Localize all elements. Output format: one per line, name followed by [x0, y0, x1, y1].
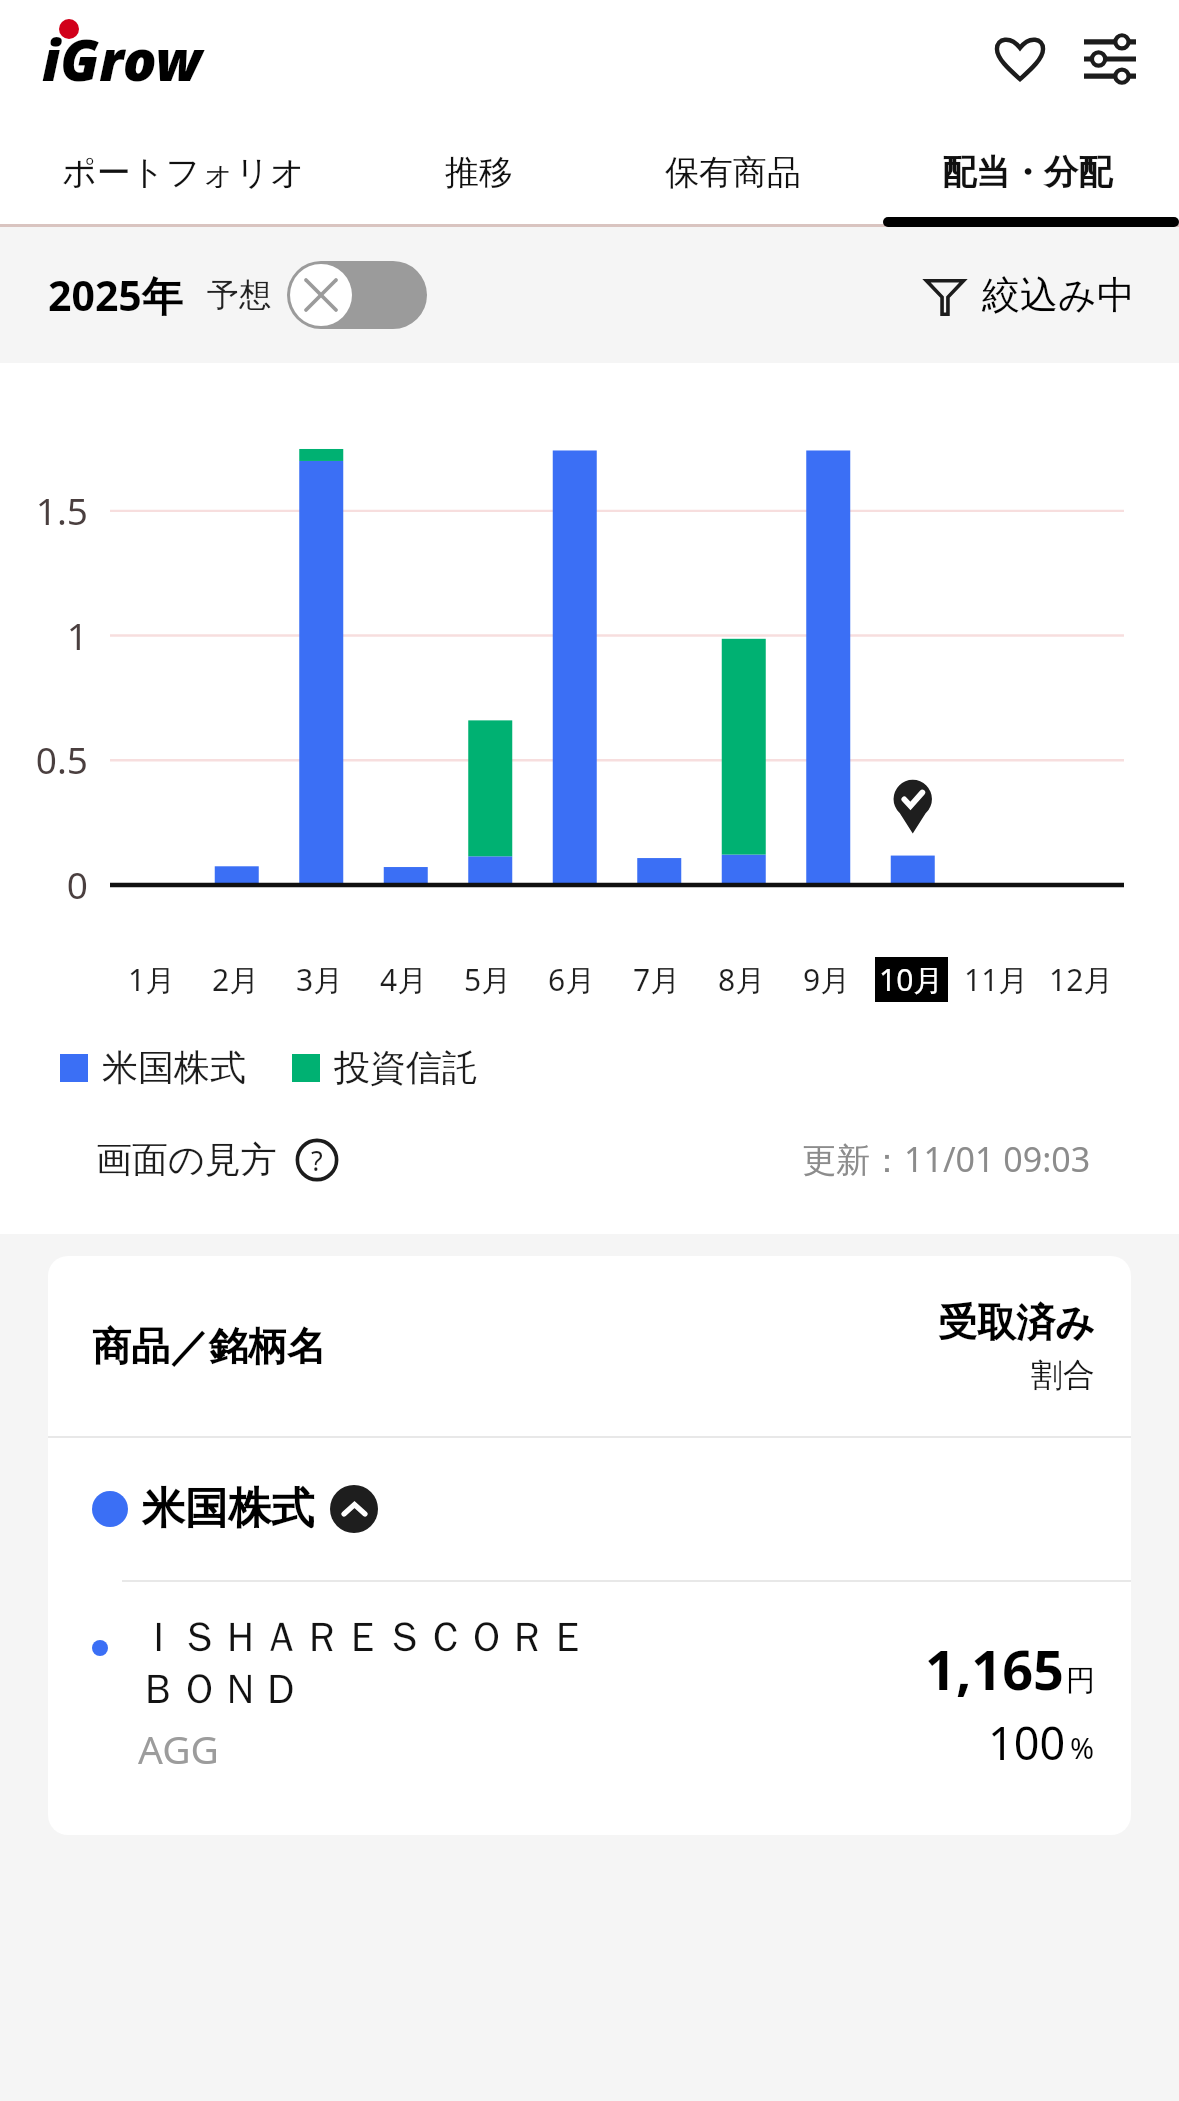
- staticText: 10月: [879, 959, 944, 1000]
- staticText: 画面の見方: [96, 1137, 277, 1182]
- button[interactable]: 予想 toggle off: [287, 261, 427, 329]
- staticText: 投資信託: [334, 1045, 478, 1090]
- staticText: 4月: [380, 959, 428, 1000]
- staticText: 円: [1066, 1662, 1095, 1699]
- staticText: 商品／銘柄名: [92, 1322, 326, 1371]
- staticText: 7月: [633, 959, 681, 1000]
- button[interactable]: ポートフォリオ: [0, 117, 366, 227]
- staticText: AGG: [138, 1722, 219, 1775]
- staticText: 受取済み: [938, 1298, 1095, 1347]
- button[interactable]: 保有商品: [592, 117, 874, 227]
- staticText: iGrow: [42, 21, 202, 97]
- staticText: 100: [988, 1712, 1066, 1773]
- button[interactable]: Filter settings: [1071, 20, 1149, 98]
- staticText: ポートフォリオ: [62, 151, 305, 194]
- staticText: 1: [66, 610, 88, 660]
- staticText: 11月: [964, 959, 1029, 1000]
- staticText: 保有商品: [665, 151, 801, 194]
- button[interactable]: ＩＳＨＡＲＥＳＣＯＲＥ: [48, 1582, 1131, 1835]
- staticText: 5月: [464, 959, 512, 1000]
- staticText: 割合: [1031, 1355, 1095, 1395]
- button[interactable]: 画面の見方: [96, 1137, 339, 1182]
- staticText: 米国株式: [142, 1482, 314, 1536]
- staticText: 1月: [128, 959, 176, 1000]
- staticText: 米国株式: [102, 1045, 246, 1090]
- staticText: %: [1070, 1728, 1095, 1767]
- button[interactable]: 米国株式: [48, 1438, 1131, 1580]
- staticText: ＢＯＮＤ: [138, 1664, 302, 1716]
- staticText: ＩＳＨＡＲＥＳＣＯＲＥ: [138, 1612, 589, 1664]
- button[interactable]: Favorites: [981, 20, 1059, 98]
- button[interactable]: 推移: [366, 117, 592, 227]
- staticText: ?: [311, 1142, 323, 1179]
- staticText: 絞込み中: [982, 271, 1135, 319]
- staticText: 2月: [212, 959, 260, 1000]
- staticText: 3月: [296, 959, 344, 1000]
- staticText: 12月: [1049, 959, 1114, 1000]
- staticText: 1,165: [925, 1632, 1064, 1706]
- staticText: 0.5: [35, 734, 88, 784]
- button[interactable]: 配当・分配: [874, 117, 1179, 227]
- staticText: 1.5: [35, 485, 88, 535]
- staticText: 推移: [445, 151, 513, 194]
- staticText: 0: [66, 859, 88, 909]
- staticText: 8月: [718, 959, 766, 1000]
- staticText: 9月: [803, 959, 851, 1000]
- button[interactable]: 絞込み中: [924, 271, 1135, 319]
- staticText: 更新：11/01 09:03: [802, 1136, 1091, 1182]
- staticText: 2025年: [48, 267, 183, 323]
- staticText: 配当・分配: [942, 151, 1112, 194]
- staticText: 6月: [548, 959, 596, 1000]
- staticText: 予想: [207, 275, 271, 315]
- other: Collapse 米国株式: [330, 1485, 378, 1533]
